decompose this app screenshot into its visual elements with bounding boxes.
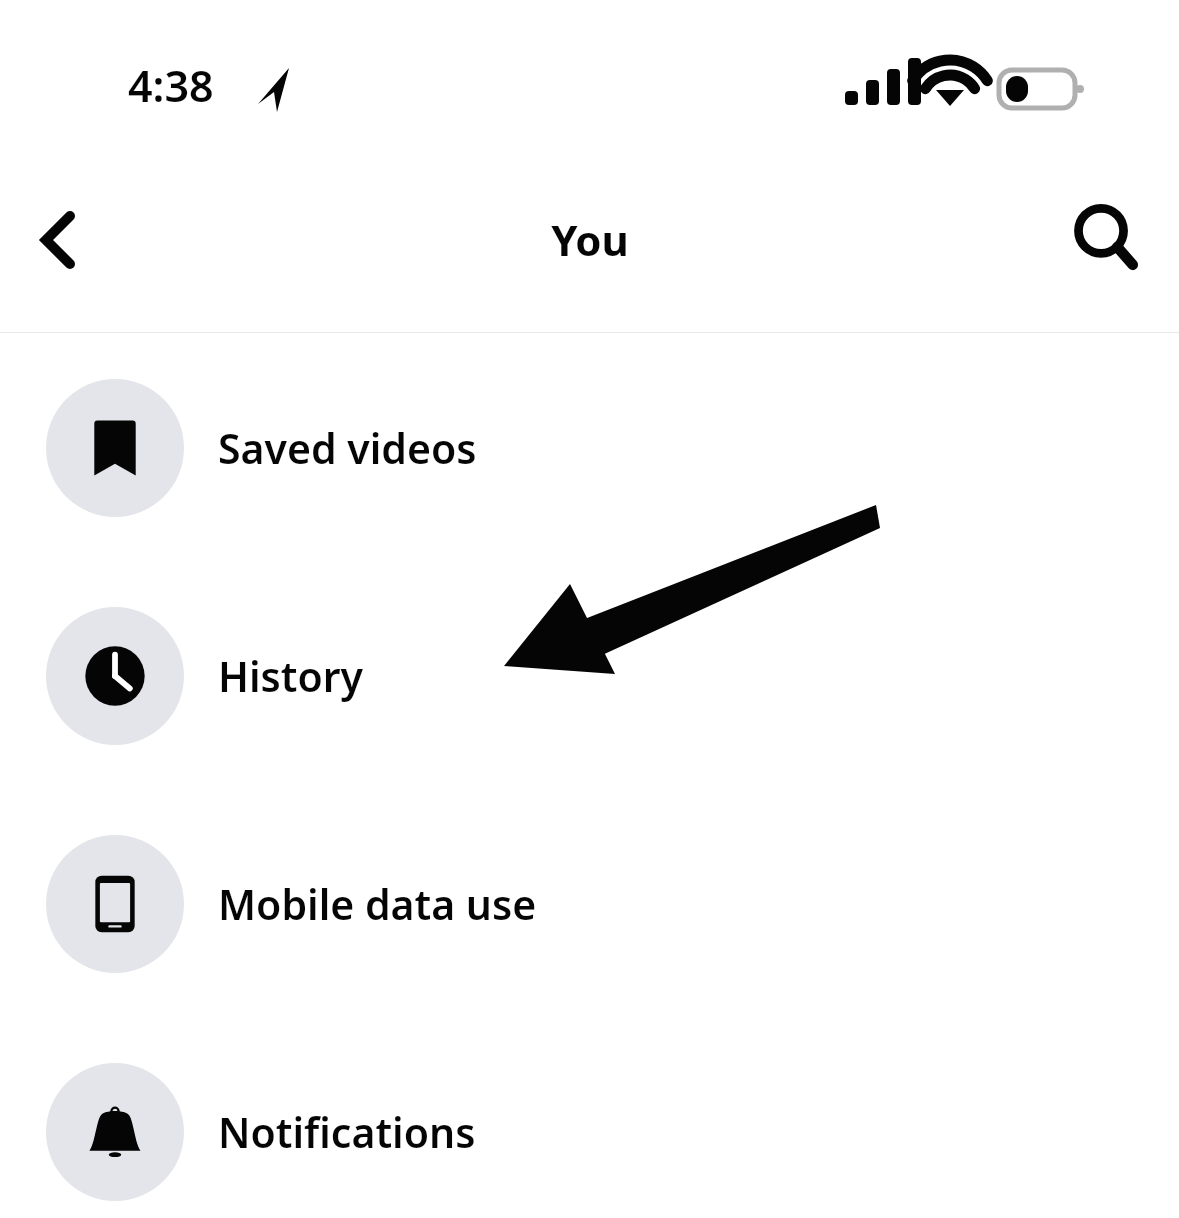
staticText: Notifications [218, 1104, 476, 1160]
button[interactable]: Mobile data use [0, 835, 1179, 973]
button[interactable]: History [0, 607, 1179, 745]
staticText: 4:38 [128, 56, 214, 115]
staticText: You [551, 211, 629, 268]
staticText: Mobile data use [218, 876, 537, 932]
button[interactable]: Saved videos [0, 379, 1179, 517]
button[interactable]: Search [1061, 194, 1153, 286]
button[interactable]: Back [14, 190, 114, 290]
staticText: History [218, 648, 364, 704]
staticText: Saved videos [218, 420, 477, 476]
button[interactable]: Notifications [0, 1063, 1179, 1201]
